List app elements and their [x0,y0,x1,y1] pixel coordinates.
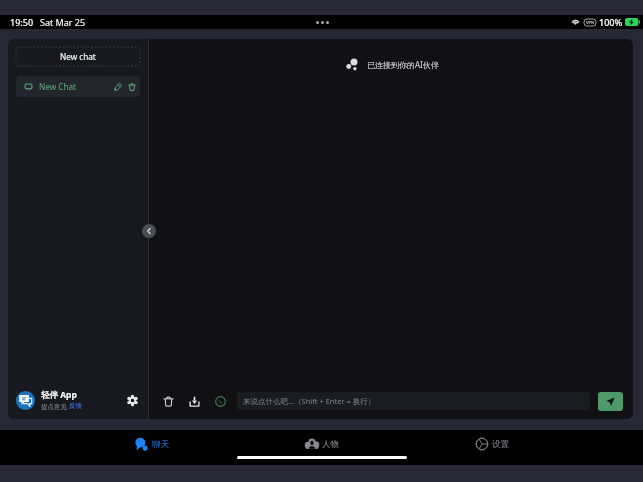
button[interactable]: Rename chat [112,81,123,92]
staticText: 来说点什么吧...（Shift + Enter = 换行） [243,396,376,406]
staticText: 19:50 [10,16,34,28]
staticText: 100% [599,16,623,28]
staticText: 提点意见 [41,402,69,411]
staticText: 设置 [492,439,509,450]
staticText: New Chat [39,81,77,92]
button[interactable]: Delete chat [126,81,137,92]
button[interactable]: Clear chat [159,392,177,410]
staticText: New chat [60,51,96,62]
staticText: Sat Mar 25 [40,16,86,28]
staticText: VPN [586,20,595,25]
button[interactable]: 设置 [407,432,577,456]
button[interactable]: 聊天 [66,432,237,456]
button[interactable]: Collapse sidebar [142,224,156,238]
button[interactable]: 人物 [237,432,407,456]
button[interactable]: New Chat [16,76,140,97]
staticText: 反馈 [69,402,82,410]
staticText: 轻伴 App [41,389,77,401]
button[interactable]: Send [598,392,623,411]
staticText: 聊天 [152,439,169,450]
button[interactable]: 轻伴 App [16,381,140,419]
button[interactable]: 来说点什么吧...（Shift + Enter = 换行） [237,392,590,410]
button[interactable]: Settings [124,392,140,408]
staticText: 已连接到你的AI伙伴 [367,59,439,70]
button[interactable]: Download [185,392,203,410]
staticText: 人物 [322,439,339,450]
button[interactable]: WhatsApp [211,392,229,410]
button[interactable]: New chat [16,47,140,66]
